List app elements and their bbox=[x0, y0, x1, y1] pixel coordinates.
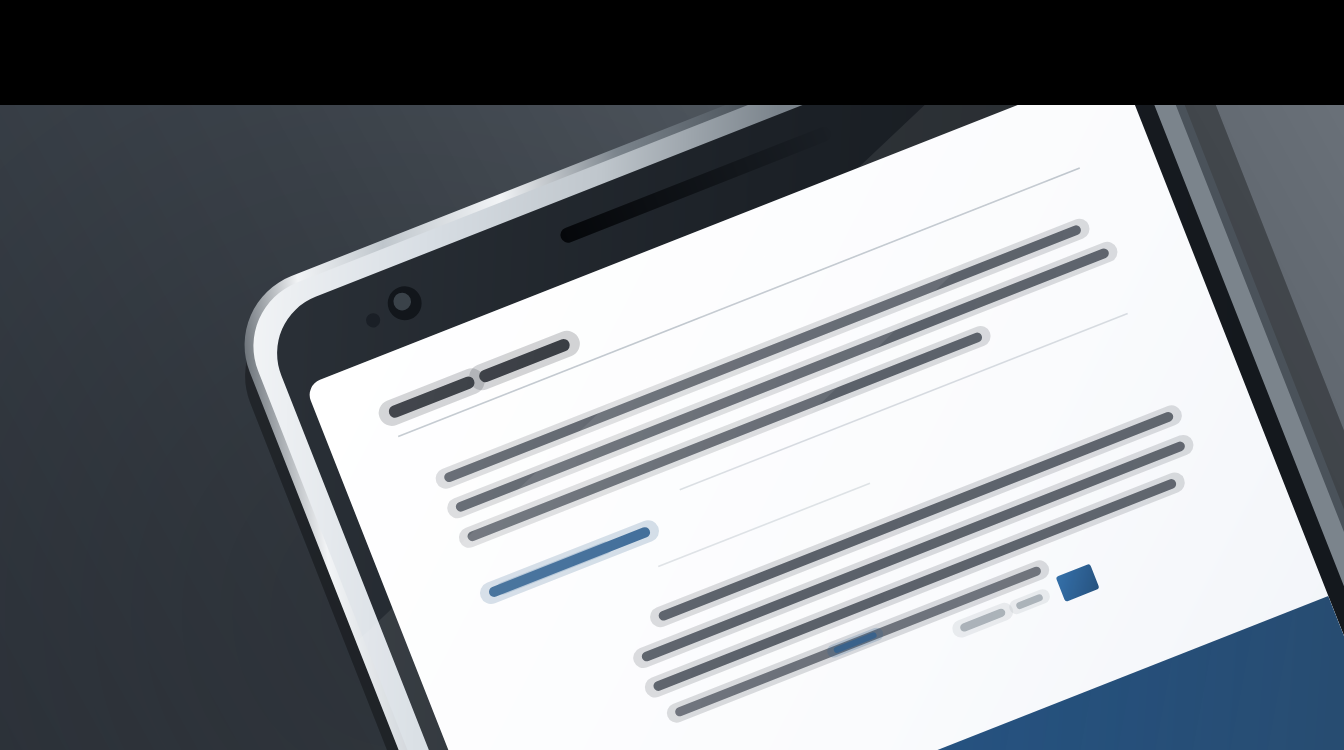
button[interactable]: Smartphone displaying a document screen bbox=[0, 0, 1344, 750]
